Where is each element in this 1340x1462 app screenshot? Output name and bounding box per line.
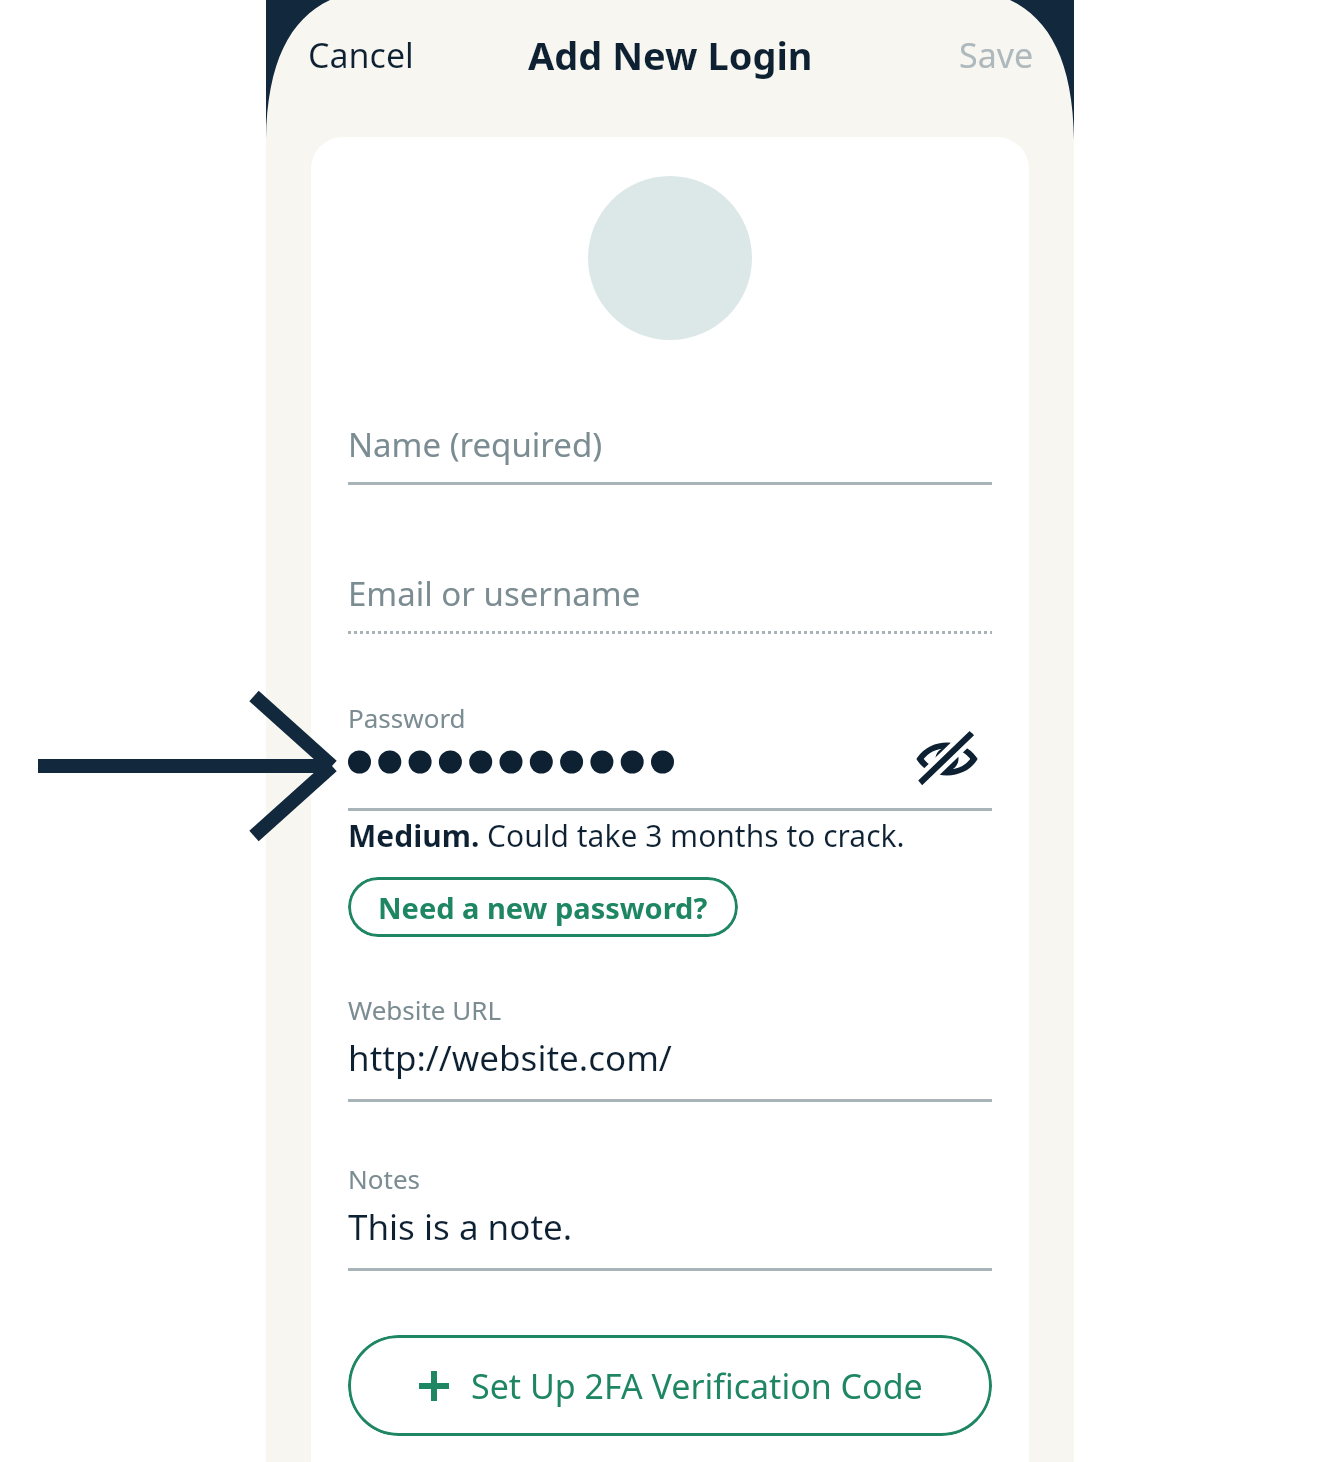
staticText: Save xyxy=(959,32,1034,78)
staticText: Website URL xyxy=(348,992,502,1027)
staticText: Cancel xyxy=(308,32,414,78)
staticText: This is a note. xyxy=(348,1203,573,1251)
staticText: Notes xyxy=(348,1161,420,1196)
staticText: Name (required) xyxy=(348,422,603,467)
staticText: Medium. Could take 3 months to crack. xyxy=(348,815,905,856)
staticText: Need a new password? xyxy=(378,888,708,927)
staticText: Password xyxy=(348,700,466,735)
staticText: Email or username xyxy=(348,571,641,616)
staticText: Set Up 2FA Verification Code xyxy=(471,1363,923,1409)
button[interactable]: Set Up 2FA Verification Code xyxy=(348,1335,992,1436)
button[interactable]: Need a new password? xyxy=(348,877,738,937)
button[interactable]: Cancel xyxy=(292,20,430,90)
button[interactable]: Save xyxy=(943,20,1050,90)
staticText: http://website.com/ xyxy=(348,1034,672,1082)
button[interactable]: Show password xyxy=(911,723,983,795)
staticText: Add New Login xyxy=(528,29,813,81)
button[interactable]: Choose icon xyxy=(588,176,752,340)
